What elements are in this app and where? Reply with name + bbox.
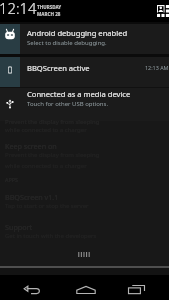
staticText: Support [5, 222, 33, 232]
staticText: Android debugging enabled [27, 28, 128, 38]
staticText: MARCH 28 [37, 11, 61, 17]
staticText: Select to disable debugging. [27, 39, 107, 47]
staticText: BBQScreen active [27, 63, 90, 73]
button[interactable]: Connected as a media device [0, 88, 169, 121]
button[interactable]: Quick settings [157, 5, 169, 18]
button[interactable]: Home [69, 279, 102, 300]
button[interactable]: Android debugging enabled [0, 24, 169, 54]
staticText: 12:13 AM [145, 64, 169, 71]
button[interactable]: Recent apps [120, 279, 153, 300]
button[interactable]: Back [15, 279, 48, 300]
button[interactable]: Drag handle [0, 246, 169, 262]
staticText: APPS [5, 176, 18, 183]
staticText: Touch for other USB options. [27, 100, 109, 108]
staticText: 12:14 [0, 0, 37, 18]
staticText: BBQScreen v1.1 [5, 192, 59, 202]
staticText: Keep screen on [5, 141, 57, 151]
staticText: Connected as a media device [27, 89, 131, 99]
staticText: THURSDAY [37, 4, 62, 10]
button[interactable]: BBQScreen active [0, 57, 169, 87]
